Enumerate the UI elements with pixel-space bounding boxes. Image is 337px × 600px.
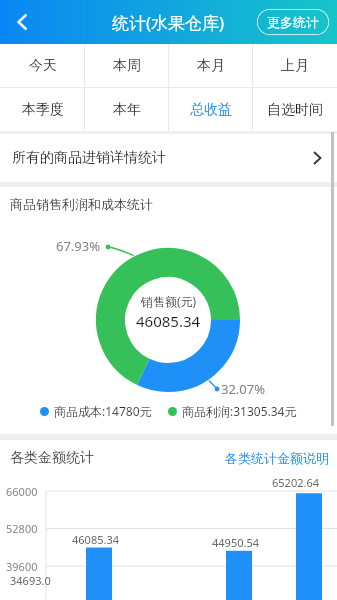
staticText: 66000 (6, 484, 38, 499)
staticText: 65202.64 (272, 475, 319, 490)
staticText: 39600 (6, 559, 38, 574)
button[interactable]: 自选时间 (253, 88, 337, 131)
button[interactable]: 所有的商品进销详情统计 (0, 134, 337, 182)
staticText: 商品销售利润和成本统计 (10, 196, 153, 212)
button[interactable]: 商品利润:31305.34元 (168, 403, 297, 419)
staticText: 商品利润:31305.34元 (182, 403, 297, 419)
staticText: 今天 (29, 57, 57, 75)
staticText: 所有的商品进销详情统计 (12, 149, 166, 167)
staticText: 本年 (113, 101, 141, 119)
staticText: 各类统计金额说明 (225, 450, 329, 466)
staticText: 更多统计 (267, 14, 319, 30)
staticText: 统计(水果仓库) (112, 11, 225, 34)
staticText: 46085.34 (72, 532, 119, 547)
button[interactable]: 商品成本:14780元 (40, 403, 152, 419)
staticText: 各类金额统计 (10, 449, 94, 467)
button[interactable]: 本月 (169, 44, 253, 87)
staticText: 总收益 (190, 101, 232, 119)
staticText: 67.93% (56, 237, 101, 255)
button[interactable]: 各类统计金额说明 (225, 440, 337, 466)
staticText: 本周 (113, 57, 141, 75)
staticText: 销售额(元) (141, 293, 197, 309)
staticText: 上月 (281, 57, 309, 75)
staticText: 自选时间 (267, 101, 323, 119)
button[interactable]: 上月 (253, 44, 337, 87)
staticText: 商品成本:14780元 (54, 403, 152, 419)
staticText: 32.07% (221, 380, 266, 398)
button[interactable]: 更多统计 (257, 9, 329, 35)
button[interactable]: 本季度 (0, 88, 85, 131)
button[interactable]: 本年 (85, 88, 169, 131)
button[interactable]: Back (0, 0, 44, 44)
staticText: 44950.54 (212, 535, 259, 550)
staticText: 34693.0 (10, 573, 51, 588)
button[interactable]: 本周 (85, 44, 169, 87)
button[interactable]: 今天 (0, 44, 85, 87)
staticText: 46085.34 (136, 311, 201, 331)
button[interactable]: 总收益 (169, 88, 253, 131)
staticText: 本季度 (22, 101, 64, 119)
staticText: 52800 (6, 521, 38, 536)
staticText: 本月 (197, 57, 225, 75)
